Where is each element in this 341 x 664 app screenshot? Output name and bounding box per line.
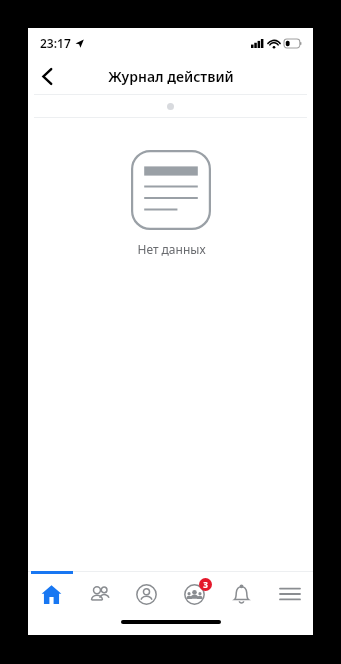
button[interactable]: Назад — [28, 58, 66, 94]
button[interactable]: Меню — [266, 571, 313, 615]
button[interactable]: Главная — [28, 571, 75, 615]
staticText: 23:17 — [40, 35, 71, 51]
staticText: Нет данных — [137, 241, 206, 257]
button[interactable]: Профиль — [123, 571, 170, 615]
staticText: Журнал действий — [108, 67, 234, 86]
button[interactable]: Группы — [171, 571, 218, 615]
staticText: 3 — [203, 579, 208, 590]
button[interactable]: Друзья — [76, 571, 123, 615]
button[interactable]: Уведомления — [218, 571, 265, 615]
